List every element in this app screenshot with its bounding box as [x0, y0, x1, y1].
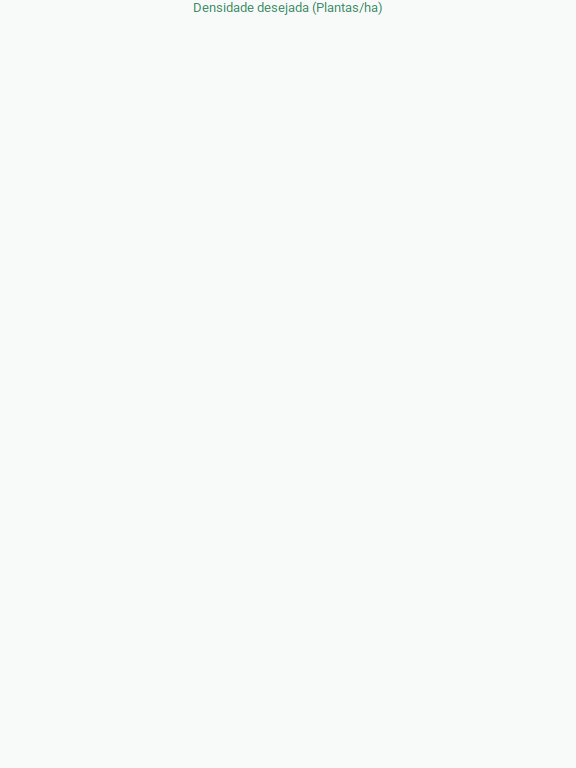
staticText: Densidade desejada (Plantas/ha) [193, 0, 383, 15]
